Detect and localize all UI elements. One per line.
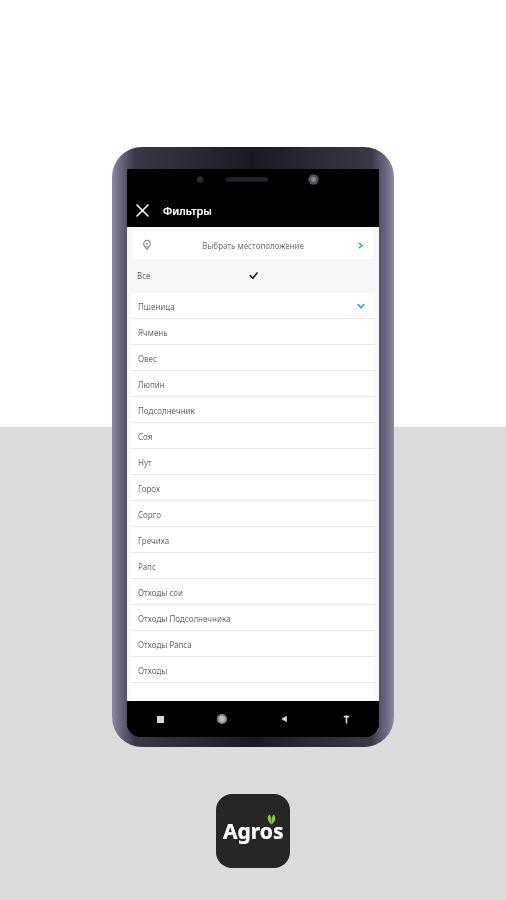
button[interactable]: Close — [127, 195, 157, 225]
button[interactable]: Отходы сои — [131, 579, 375, 605]
staticText: Agros — [223, 817, 284, 846]
staticText: Пшеница — [138, 301, 175, 312]
staticText: Подсолнечник — [138, 405, 195, 416]
button[interactable]: More — [335, 708, 357, 730]
button[interactable]: Agros app icon — [216, 794, 290, 868]
button[interactable]: Люпин — [131, 371, 375, 397]
staticText: Рапс — [138, 561, 156, 572]
staticText: Отходы — [138, 665, 168, 676]
staticText: Отходы Рапса — [138, 639, 192, 650]
staticText: Овес — [138, 353, 157, 364]
staticText: ·· — [198, 177, 202, 185]
staticText: Отходы сои — [138, 587, 183, 598]
staticText: Выбрать местоположение — [202, 240, 304, 251]
button[interactable]: Гречиха — [131, 527, 375, 553]
button[interactable]: Горох — [131, 475, 375, 501]
staticText: Отходы Подсолнечника — [138, 613, 231, 624]
button[interactable]: Home — [211, 708, 233, 730]
staticText: Люпин — [138, 379, 165, 390]
staticText: Сорго — [138, 509, 161, 520]
button[interactable]: Все — [127, 263, 379, 288]
staticText: Фильтры — [163, 203, 213, 218]
staticText: Ячмень — [138, 327, 168, 338]
button[interactable]: Выбрать местоположение — [132, 231, 374, 259]
staticText: Гречиха — [138, 535, 170, 546]
button[interactable]: Подсолнечник — [131, 397, 375, 423]
button[interactable]: Рапс — [131, 553, 375, 579]
staticText: Соя — [138, 431, 153, 442]
button[interactable]: Back — [273, 708, 295, 730]
button[interactable]: Соя — [131, 423, 375, 449]
button[interactable]: Отходы Рапса — [131, 631, 375, 657]
button[interactable]: Отходы Подсолнечника — [131, 605, 375, 631]
button[interactable]: Ячмень — [131, 319, 375, 345]
staticText: Горох — [138, 483, 161, 494]
staticText: Все — [137, 270, 151, 281]
button[interactable]: Recents — [149, 708, 171, 730]
staticText: Нут — [138, 457, 152, 468]
button[interactable]: Пшеница — [131, 293, 375, 319]
button[interactable]: Овес — [131, 345, 375, 371]
button[interactable]: Отходы — [131, 657, 375, 683]
button[interactable]: Сорго — [131, 501, 375, 527]
button[interactable]: Нут — [131, 449, 375, 475]
